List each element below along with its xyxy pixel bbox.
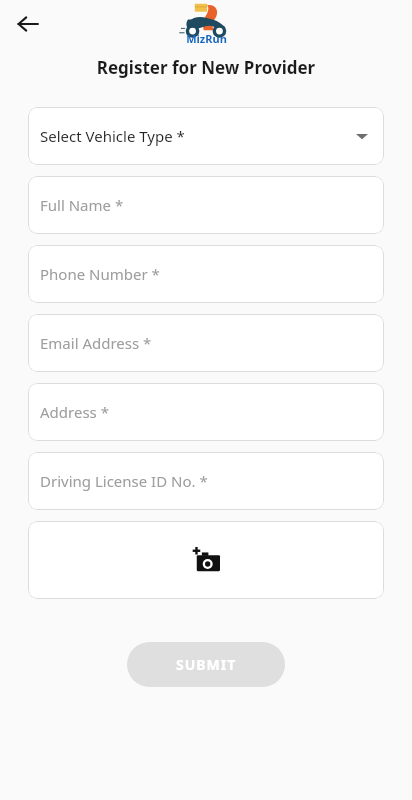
staticText: Driving License ID No. * xyxy=(40,471,208,491)
staticText: Full Name * xyxy=(40,195,124,215)
button[interactable]: Select Vehicle Type * xyxy=(28,107,384,165)
staticText: SUBMIT xyxy=(176,655,237,674)
staticText: Address * xyxy=(40,402,109,422)
button[interactable]: Back xyxy=(8,4,48,44)
button[interactable]: Phone Number * xyxy=(28,245,384,303)
button[interactable]: Address * xyxy=(28,383,384,441)
staticText: Phone Number * xyxy=(40,264,160,284)
staticText: MizRun xyxy=(186,31,227,46)
staticText: Email Address * xyxy=(40,333,152,353)
staticText: Register for New Provider xyxy=(0,56,412,79)
button[interactable]: Driving License ID No. * xyxy=(28,452,384,510)
button[interactable]: Add photo xyxy=(28,521,384,599)
button[interactable]: Full Name * xyxy=(28,176,384,234)
button[interactable]: Email Address * xyxy=(28,314,384,372)
button[interactable]: SUBMIT xyxy=(127,642,285,687)
staticText: Select Vehicle Type * xyxy=(40,126,185,146)
